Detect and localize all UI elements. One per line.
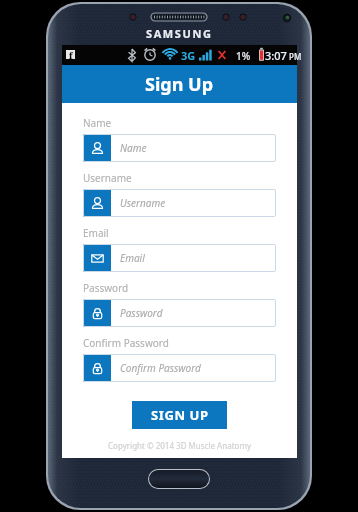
staticText: Password xyxy=(83,281,129,295)
staticText: Username xyxy=(120,196,166,210)
staticText: Name xyxy=(83,116,112,130)
staticText: Password xyxy=(120,306,163,320)
button[interactable]: Name xyxy=(83,134,276,162)
staticText: Copyright © 2014 3D Muscle Anatomy xyxy=(83,440,276,451)
button[interactable]: Home xyxy=(149,470,209,488)
staticText: Email xyxy=(83,226,109,240)
staticText: 1% xyxy=(236,49,251,63)
button[interactable]: SIGN UP xyxy=(132,401,227,429)
staticText: Username xyxy=(83,171,132,185)
button[interactable]: Email xyxy=(83,244,276,272)
staticText: Name xyxy=(120,141,147,155)
button[interactable]: Password xyxy=(83,299,276,327)
staticText: Confirm Password xyxy=(120,361,201,375)
button[interactable]: Username xyxy=(83,189,276,217)
staticText: Email xyxy=(120,251,145,265)
staticText: SAMSUNG xyxy=(146,26,213,41)
button[interactable]: Confirm Password xyxy=(83,354,276,382)
staticText: Confirm Password xyxy=(83,336,169,350)
staticText: SIGN UP xyxy=(151,406,209,424)
staticText: 3:07 xyxy=(265,48,287,63)
staticText: f xyxy=(69,50,73,59)
staticText: PM xyxy=(289,51,302,62)
staticText: 3G xyxy=(181,48,196,63)
staticText: Sign Up xyxy=(145,72,214,97)
